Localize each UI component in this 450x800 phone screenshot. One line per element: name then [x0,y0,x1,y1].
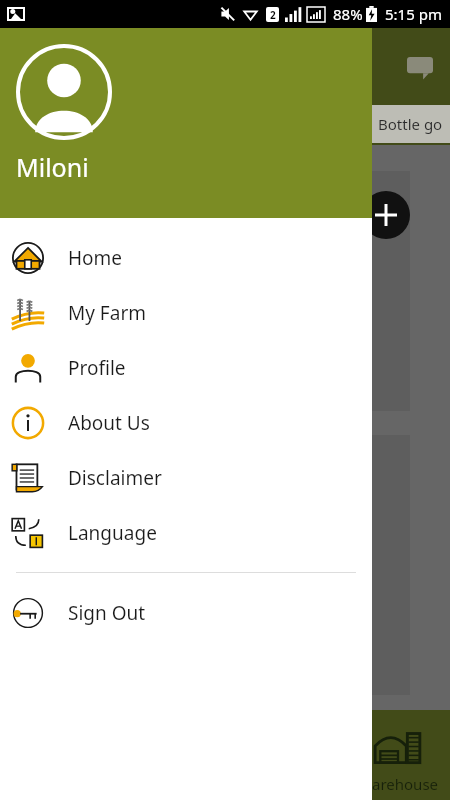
staticText: My Farm [68,300,146,326]
button[interactable]: Language [0,505,372,560]
staticText: 5:15 pm [385,4,442,24]
staticText: 88% [333,4,363,24]
staticText: Bottle go [378,114,443,134]
staticText: Home [68,245,123,271]
button[interactable]: About Us [0,395,372,450]
button[interactable]: Sign Out [0,585,372,640]
staticText: arehouse [372,774,439,794]
button[interactable]: Home [0,230,372,285]
staticText: 2 [270,8,276,22]
button[interactable]: Add [362,191,410,239]
staticText: Disclaimer [68,465,162,491]
staticText: Miloni [16,150,89,184]
staticText: About Us [68,410,150,436]
staticText: Profile [68,355,126,381]
button[interactable]: Disclaimer [0,450,372,505]
staticText: Sign Out [68,600,146,626]
button[interactable]: Profile [0,340,372,395]
button[interactable]: Messages [398,45,442,89]
button[interactable]: My Farm [0,285,372,340]
staticText: Language [68,520,157,546]
